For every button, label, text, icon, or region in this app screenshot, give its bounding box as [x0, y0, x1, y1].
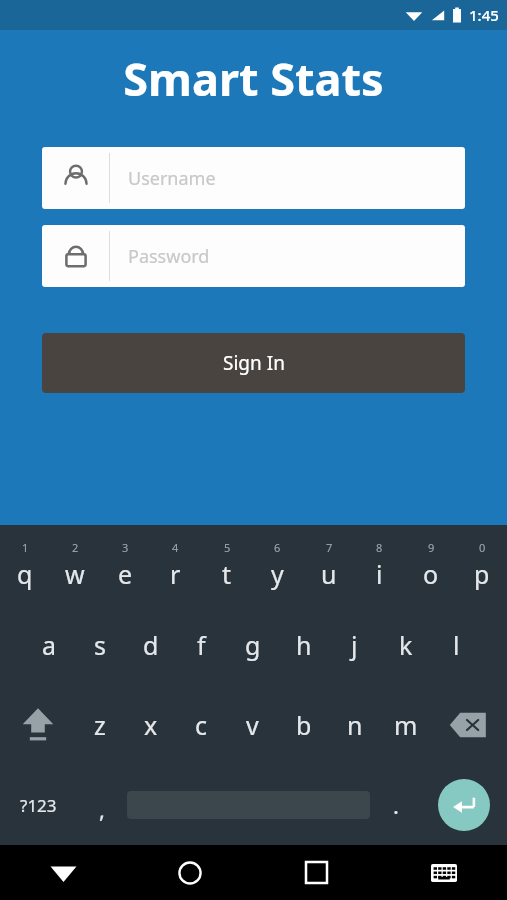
button[interactable]: b	[278, 685, 329, 765]
button[interactable]: ,	[76, 765, 127, 845]
staticText: f	[197, 628, 206, 662]
staticText: 1	[22, 540, 29, 555]
staticText: n	[347, 708, 363, 742]
button[interactable]: n	[329, 685, 380, 765]
staticText: q	[17, 557, 33, 591]
staticText: ,	[99, 794, 105, 824]
staticText: 8	[376, 540, 383, 555]
button[interactable]: g	[227, 605, 278, 685]
button[interactable]: Password	[42, 225, 465, 287]
staticText: e	[118, 557, 133, 591]
button[interactable]: Enter	[421, 765, 507, 845]
staticText: 0	[479, 540, 486, 555]
button[interactable]: v	[227, 685, 278, 765]
button[interactable]: 4	[150, 525, 201, 605]
staticText: y	[271, 557, 284, 591]
button[interactable]: 2	[50, 525, 100, 605]
staticText: x	[144, 708, 158, 742]
staticText: d	[143, 628, 159, 662]
button[interactable]: Space	[127, 765, 370, 845]
staticText: Password	[128, 244, 210, 269]
button[interactable]: x	[125, 685, 176, 765]
staticText: v	[246, 708, 259, 742]
staticText: c	[195, 708, 208, 742]
button[interactable]: Back	[0, 845, 126, 900]
staticText: 1:45	[469, 5, 499, 25]
button[interactable]: h	[278, 605, 329, 685]
button[interactable]: s	[74, 605, 125, 685]
staticText: s	[94, 628, 106, 662]
button[interactable]: 5	[201, 525, 252, 605]
button[interactable]: Username	[42, 147, 465, 209]
button[interactable]: Sign In	[42, 333, 465, 393]
button[interactable]: Switch keyboard	[380, 845, 507, 900]
staticText: a	[42, 628, 57, 662]
staticText: w	[65, 557, 85, 591]
staticText: 3	[122, 540, 129, 555]
staticText: 2	[72, 540, 79, 555]
staticText: m	[394, 708, 418, 742]
staticText: ?123	[20, 794, 57, 817]
staticText: Smart Stats	[0, 48, 507, 109]
button[interactable]: a	[24, 605, 74, 685]
staticText: Sign In	[223, 350, 285, 376]
button[interactable]: Shift	[0, 685, 75, 765]
button[interactable]: .	[370, 765, 421, 845]
staticText: r	[170, 557, 181, 591]
staticText: j	[351, 628, 358, 662]
button[interactable]: j	[329, 605, 380, 685]
staticText: Username	[128, 166, 216, 191]
staticText: g	[245, 628, 261, 662]
button[interactable]: f	[176, 605, 227, 685]
button[interactable]: Backspace	[431, 685, 507, 765]
button[interactable]: 8	[354, 525, 405, 605]
staticText: 4	[172, 540, 179, 555]
staticText: k	[399, 628, 413, 662]
button[interactable]: k	[380, 605, 431, 685]
button[interactable]: Home	[126, 845, 253, 900]
staticText: p	[474, 557, 490, 591]
button[interactable]: 9	[405, 525, 456, 605]
staticText: o	[423, 557, 439, 591]
button[interactable]: m	[380, 685, 431, 765]
staticText: 9	[428, 540, 435, 555]
button[interactable]: 1	[0, 525, 50, 605]
staticText: h	[296, 628, 312, 662]
staticText: b	[296, 708, 312, 742]
staticText: 5	[224, 540, 231, 555]
staticText: 6	[274, 540, 281, 555]
button[interactable]: c	[176, 685, 227, 765]
button[interactable]: 6	[252, 525, 303, 605]
button[interactable]: z	[75, 685, 125, 765]
button[interactable]: ?123	[0, 765, 76, 845]
staticText: 7	[326, 540, 333, 555]
button[interactable]: d	[125, 605, 176, 685]
staticText: i	[376, 557, 383, 591]
button[interactable]: 0	[456, 525, 507, 605]
button[interactable]: 3	[100, 525, 150, 605]
staticText: t	[222, 557, 232, 591]
button[interactable]: 7	[303, 525, 354, 605]
staticText: .	[393, 790, 399, 820]
button[interactable]: l	[431, 605, 482, 685]
staticText: z	[94, 708, 106, 742]
button[interactable]: Recents	[253, 845, 380, 900]
staticText: l	[453, 628, 460, 662]
staticText: u	[321, 557, 337, 591]
